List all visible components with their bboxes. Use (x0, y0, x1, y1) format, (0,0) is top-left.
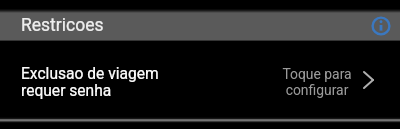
staticText: Exclusao de viagem requer senha (21, 65, 278, 100)
button[interactable]: Info (369, 14, 393, 38)
staticText: Restricoes (21, 15, 104, 36)
button[interactable]: Exclusao de viagem requer senha (0, 41, 400, 118)
staticText: Toque para configurar (282, 66, 352, 99)
